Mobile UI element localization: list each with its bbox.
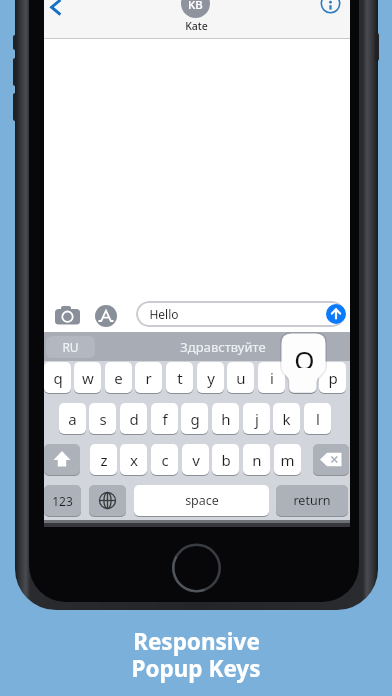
button[interactable]: k — [273, 403, 300, 434]
button[interactable] — [89, 485, 126, 516]
staticText: r — [145, 368, 152, 388]
button[interactable]: w — [74, 362, 101, 393]
button[interactable]: x — [120, 444, 147, 475]
button[interactable]: c — [151, 444, 178, 475]
button[interactable]: i — [258, 362, 285, 393]
staticText: b — [221, 450, 231, 470]
staticText: a — [68, 409, 77, 429]
staticText: Popup Keys — [131, 653, 261, 684]
button[interactable]: Здравствуйте — [97, 336, 348, 358]
button[interactable]: b — [212, 444, 239, 475]
staticText: m — [280, 450, 295, 470]
button[interactable]: h — [212, 403, 239, 434]
button[interactable]: e — [105, 362, 132, 393]
staticText: x — [130, 450, 138, 470]
button[interactable] — [136, 301, 345, 327]
staticText: Responsive — [133, 626, 260, 657]
staticText: Здравствуйте — [180, 338, 266, 356]
button[interactable]: t — [166, 362, 193, 393]
button[interactable]: O — [282, 342, 326, 368]
button[interactable] — [44, 444, 80, 475]
button[interactable]: j — [243, 403, 270, 434]
button[interactable]: space — [134, 485, 269, 516]
button[interactable]: v — [182, 444, 209, 475]
staticText: d — [129, 409, 139, 429]
staticText: c — [161, 450, 169, 470]
staticText: Kate — [185, 19, 208, 33]
button[interactable]: d — [120, 403, 147, 434]
button[interactable] — [44, 0, 350, 38]
button[interactable]: 123 — [44, 485, 81, 516]
button[interactable]: a — [59, 403, 86, 434]
button[interactable] — [48, 0, 66, 18]
button[interactable]: r — [135, 362, 162, 393]
staticText: 123 — [52, 493, 73, 509]
button[interactable]: g — [181, 403, 208, 434]
staticText: RU — [62, 339, 79, 355]
button[interactable] — [326, 304, 346, 324]
button[interactable]: q — [44, 362, 71, 393]
staticText: Hello — [149, 306, 179, 322]
staticText: k — [282, 409, 291, 429]
button[interactable]: p — [319, 362, 346, 393]
button[interactable]: return — [276, 485, 348, 516]
staticText: q — [53, 368, 63, 388]
staticText: KB — [188, 0, 203, 13]
button[interactable]: n — [243, 444, 270, 475]
staticText: return — [293, 492, 331, 509]
button[interactable] — [53, 303, 82, 327]
staticText: t — [177, 368, 183, 388]
button[interactable]: u — [227, 362, 254, 393]
staticText: g — [190, 409, 200, 429]
staticText: l — [316, 409, 320, 429]
button[interactable]: l — [304, 403, 331, 434]
staticText: v — [192, 450, 200, 470]
staticText: y — [207, 368, 215, 388]
staticText: i — [270, 368, 274, 388]
button[interactable]: m — [274, 444, 301, 475]
button[interactable]: y — [197, 362, 224, 393]
button[interactable] — [313, 444, 349, 475]
staticText: f — [162, 409, 168, 429]
button[interactable]: f — [151, 403, 178, 434]
staticText: u — [236, 368, 246, 388]
staticText: j — [255, 409, 259, 429]
staticText: h — [221, 409, 231, 429]
staticText: n — [252, 450, 262, 470]
button[interactable]: s — [89, 403, 116, 434]
staticText: s — [99, 409, 107, 429]
staticText: O — [294, 342, 315, 368]
button[interactable] — [321, 0, 340, 14]
button[interactable]: RU — [46, 336, 95, 358]
button[interactable]: z — [90, 444, 117, 475]
staticText: w — [82, 368, 94, 388]
staticText: p — [328, 368, 338, 388]
staticText: space — [185, 492, 219, 509]
staticText: e — [114, 368, 123, 388]
staticText: z — [100, 450, 108, 470]
button[interactable]: o — [289, 362, 316, 393]
button[interactable] — [95, 305, 117, 327]
